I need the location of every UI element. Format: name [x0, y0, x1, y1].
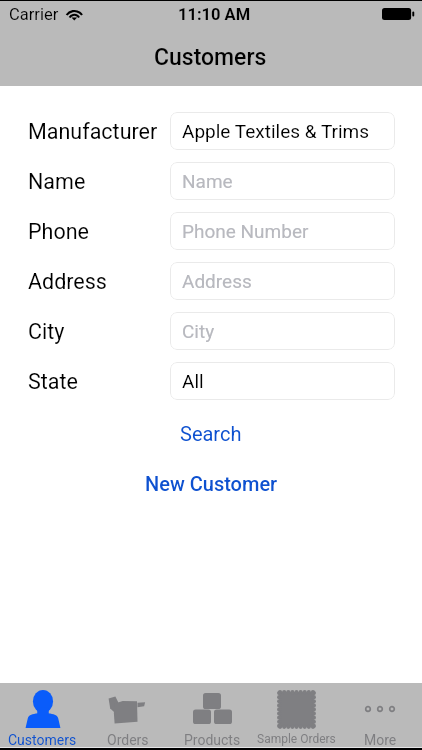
- button[interactable]: Orders: [85, 683, 170, 750]
- staticText: Customers: [8, 732, 77, 748]
- button[interactable]: New Customer: [0, 468, 422, 498]
- staticText: Orders: [107, 732, 149, 748]
- button[interactable]: City: [170, 312, 395, 350]
- staticText: 11:10 AM: [178, 5, 251, 24]
- staticText: Phone: [28, 219, 89, 244]
- button[interactable]: All: [170, 362, 395, 400]
- button[interactable]: More: [338, 683, 422, 750]
- staticText: City: [28, 319, 65, 344]
- staticText: Name: [182, 170, 233, 192]
- button[interactable]: Search: [0, 418, 422, 448]
- staticText: Customers: [154, 44, 267, 71]
- staticText: State: [28, 369, 78, 394]
- button[interactable]: Customers: [0, 683, 85, 750]
- staticText: Manufacturer: [28, 119, 158, 144]
- staticText: New Customer: [145, 472, 278, 495]
- staticText: Phone Number: [182, 220, 309, 242]
- staticText: Carrier: [9, 5, 59, 24]
- staticText: Apple Textiles & Trims: [182, 120, 370, 142]
- staticText: All: [182, 370, 204, 392]
- staticText: City: [182, 320, 215, 342]
- staticText: More: [364, 732, 397, 748]
- button[interactable]: Address: [170, 262, 395, 300]
- button[interactable]: Sample Orders: [254, 683, 338, 750]
- button[interactable]: Name: [170, 162, 395, 200]
- button[interactable]: Products: [170, 683, 254, 750]
- staticText: Sample Orders: [257, 732, 336, 746]
- staticText: Address: [182, 270, 252, 292]
- button[interactable]: Phone Number: [170, 212, 395, 250]
- staticText: Name: [28, 169, 86, 194]
- staticText: Products: [184, 732, 241, 748]
- staticText: Address: [28, 269, 107, 294]
- staticText: Search: [180, 422, 242, 445]
- button[interactable]: Apple Textiles & Trims: [170, 112, 395, 150]
